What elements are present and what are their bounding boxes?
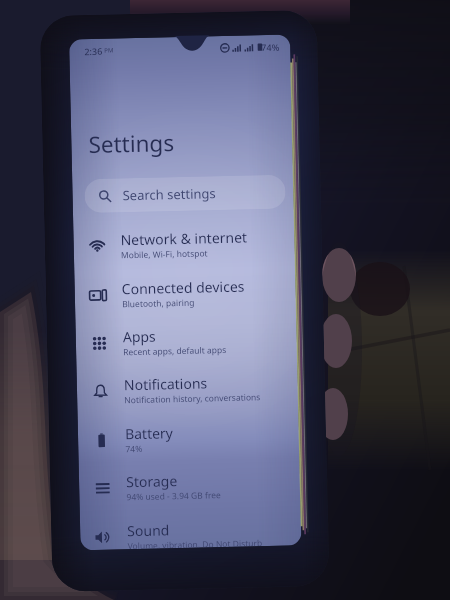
staticText: Network & internet bbox=[120, 227, 248, 249]
staticText: 94% used - 3.94 GB free bbox=[126, 489, 221, 503]
staticText: Notification history, conversations bbox=[124, 391, 261, 406]
staticText: Notifications bbox=[124, 373, 208, 394]
button[interactable]: Search settings bbox=[84, 175, 286, 213]
button[interactable]: Sound bbox=[80, 508, 302, 550]
staticText: 2:36 bbox=[84, 45, 102, 57]
staticText: 74% bbox=[125, 443, 142, 455]
staticText: Apps bbox=[123, 327, 156, 346]
staticText: Recent apps, default apps bbox=[123, 344, 227, 358]
staticText: Settings bbox=[88, 127, 175, 160]
button[interactable]: Battery bbox=[78, 411, 300, 464]
staticText: Volume, vibration, Do Not Disturb bbox=[127, 537, 263, 549]
staticText: Mobile, Wi-Fi, hotspot bbox=[121, 247, 208, 261]
staticText: Storage bbox=[126, 471, 178, 491]
staticText: Search settings bbox=[122, 184, 217, 204]
button[interactable]: Apps bbox=[75, 314, 297, 367]
button[interactable]: Network & internet bbox=[73, 217, 295, 270]
button[interactable]: Storage bbox=[79, 459, 301, 512]
staticText: PM bbox=[104, 46, 114, 55]
staticText: Connected devices bbox=[121, 277, 245, 298]
staticText: Battery bbox=[125, 423, 173, 443]
button[interactable]: Connected devices bbox=[74, 266, 296, 319]
staticText: Bluetooth, pairing bbox=[122, 297, 195, 310]
staticText: 74% bbox=[261, 41, 279, 53]
button[interactable]: Notifications bbox=[76, 362, 298, 415]
staticText: Sound bbox=[127, 520, 170, 540]
